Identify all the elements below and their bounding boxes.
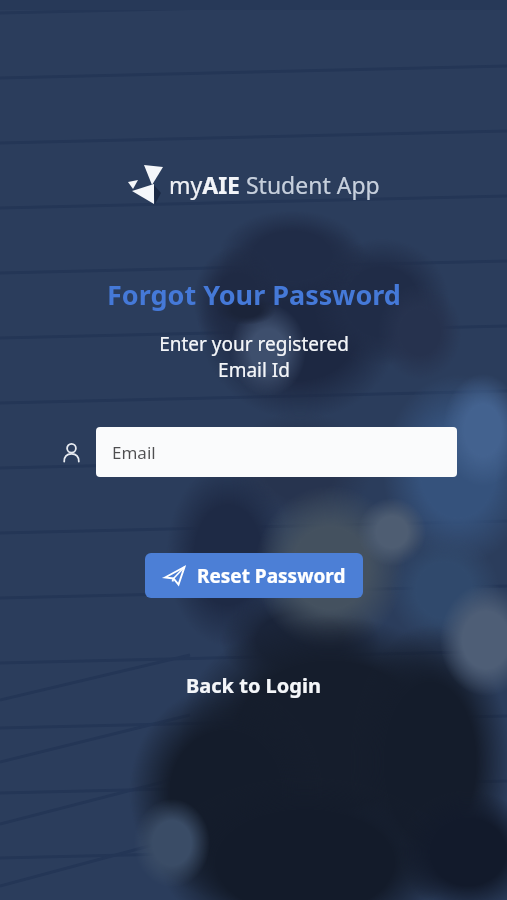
staticText: Reset Password xyxy=(197,563,346,589)
button[interactable]: Reset Password xyxy=(145,553,363,598)
staticText: Enter your registered Email Id xyxy=(159,331,349,383)
staticText: Forgot Your Password xyxy=(107,276,401,313)
staticText: Email xyxy=(112,441,156,464)
button[interactable]: Back to Login xyxy=(186,672,321,699)
button[interactable]: Email xyxy=(96,427,457,477)
staticText: myAIE Student App xyxy=(169,169,380,200)
